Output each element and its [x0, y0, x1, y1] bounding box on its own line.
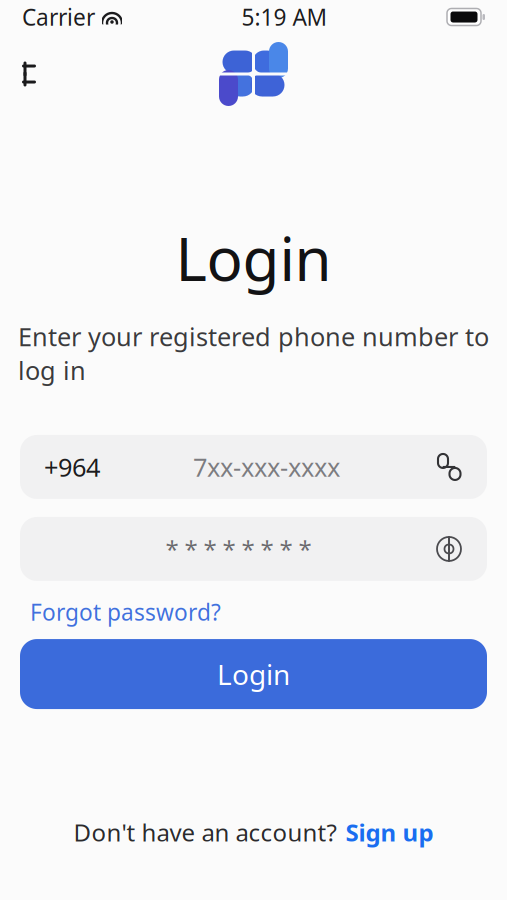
staticText: * * * * * * * * [165, 533, 311, 565]
button[interactable]: Sign up [345, 816, 433, 848]
staticText: Carrier [22, 2, 95, 32]
staticText: Sign up [345, 816, 433, 848]
staticText: Login [217, 655, 290, 693]
button[interactable]: Back [6, 50, 54, 98]
staticText: Login [175, 218, 331, 298]
staticText: 5:19 AM [241, 2, 327, 32]
staticText: Forgot password? [30, 597, 221, 627]
staticText: Enter your registered phone number to lo… [18, 320, 489, 387]
button[interactable]: Pick contact [433, 451, 465, 483]
button[interactable]: Forgot password? [30, 597, 221, 627]
staticText: 7xx-xxx-xxxx [193, 450, 340, 484]
button[interactable]: Show password [433, 533, 465, 565]
button[interactable]: Login [20, 639, 487, 709]
staticText: Don't have an account? [73, 816, 336, 848]
staticText: +964 [44, 450, 100, 484]
